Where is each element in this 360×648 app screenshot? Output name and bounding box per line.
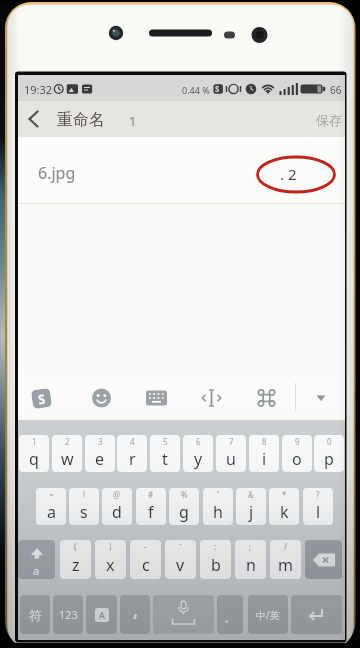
button[interactable]: ~ (36, 488, 66, 525)
staticText: ; (249, 541, 252, 552)
button[interactable] (291, 595, 342, 634)
staticText: * (282, 489, 287, 500)
button[interactable]: @ (102, 488, 132, 525)
staticText: a (47, 501, 56, 523)
button[interactable] (18, 101, 58, 138)
staticText: 2 (65, 436, 70, 447)
staticText: x (106, 554, 115, 576)
button[interactable]: 123 (53, 595, 83, 634)
staticText: ˉ (179, 541, 183, 552)
staticText: k (280, 501, 289, 523)
staticText: S (37, 389, 47, 408)
staticText: & (248, 489, 254, 500)
staticText: 保存 (316, 112, 342, 128)
staticText: 3 (98, 436, 103, 447)
button[interactable]: 中/英 (248, 595, 288, 634)
button[interactable]: 1 (19, 435, 49, 472)
button[interactable] (83, 378, 120, 418)
button[interactable]: 6 (183, 435, 213, 472)
staticText: ) (109, 541, 112, 552)
staticText: 4 (130, 436, 135, 447)
button[interactable]: 7 (216, 435, 246, 472)
staticText: s (80, 501, 88, 523)
button[interactable] (305, 540, 342, 579)
staticText: 6.jpg (38, 162, 76, 184)
button[interactable]: / (270, 540, 301, 579)
button[interactable]: 符 (20, 595, 50, 634)
staticText: - (144, 541, 147, 552)
staticText: , (133, 599, 138, 622)
button[interactable]: 4 (117, 435, 147, 472)
button[interactable]: * (269, 488, 299, 525)
button[interactable]: ' (203, 488, 233, 525)
button[interactable] (153, 595, 214, 634)
button[interactable]: - (130, 540, 161, 579)
staticText: : (214, 541, 217, 552)
staticText: % (181, 489, 188, 500)
button[interactable]: 6.jpg (18, 137, 345, 203)
button[interactable] (248, 378, 285, 418)
staticText: 7 (229, 436, 234, 447)
button[interactable]: a (18, 540, 55, 579)
button[interactable]: 5 (150, 435, 180, 472)
staticText: 66 (330, 83, 342, 97)
staticText: 重命名 (57, 110, 105, 130)
button[interactable]: 0 (314, 435, 344, 472)
button[interactable]: ; (235, 540, 266, 579)
staticText: c (142, 554, 150, 576)
staticText: 19:32 (24, 82, 53, 97)
staticText: 1 (32, 436, 37, 447)
staticText: n (246, 554, 256, 576)
staticText: j (249, 501, 254, 523)
staticText: 0.44 % (182, 84, 210, 96)
button[interactable]: ! (69, 488, 99, 525)
button[interactable] (138, 378, 175, 418)
staticText: i (262, 448, 267, 470)
staticText: 9 (295, 436, 300, 447)
staticText: 0 (327, 436, 332, 447)
button[interactable] (193, 378, 230, 418)
staticText: r (129, 448, 136, 470)
staticText: 8 (262, 436, 267, 447)
staticText: 1 (129, 112, 137, 130)
button[interactable]: # (136, 488, 166, 525)
staticText: b (211, 554, 221, 576)
staticText: ( (74, 541, 77, 552)
staticText: 。 (224, 609, 237, 625)
button[interactable]: ˉ (165, 540, 196, 579)
button[interactable]: 8 (249, 435, 279, 472)
button[interactable]: ? (303, 488, 333, 525)
button[interactable]: 。 (217, 595, 243, 634)
staticText: 5 (163, 436, 168, 447)
button[interactable]: S (23, 378, 60, 418)
staticText: g (179, 501, 189, 523)
staticText: A (99, 609, 105, 621)
button[interactable]: & (236, 488, 266, 525)
button[interactable]: % (169, 488, 199, 525)
staticText: z (72, 554, 80, 576)
staticText: 123 (59, 607, 78, 622)
staticText: l (316, 501, 321, 523)
staticText: ! (83, 489, 86, 500)
button[interactable]: 保存 (313, 101, 345, 138)
staticText: a (33, 563, 40, 578)
button[interactable]: 3 (85, 435, 115, 472)
button[interactable]: A (86, 595, 117, 634)
button[interactable]: , (120, 595, 150, 634)
button[interactable]: ) (95, 540, 126, 579)
button[interactable]: ( (60, 540, 91, 579)
button[interactable]: 9 (282, 435, 312, 472)
button[interactable]: 2 (52, 435, 82, 472)
staticText: / (284, 541, 287, 552)
staticText: q (29, 448, 39, 470)
staticText: t (162, 448, 168, 470)
staticText: ? (316, 489, 320, 500)
staticText: u (226, 448, 236, 470)
staticText: # (148, 489, 154, 500)
staticText: ~ (49, 489, 54, 500)
staticText: 6 (196, 436, 201, 447)
staticText: d (112, 501, 122, 523)
button[interactable] (303, 378, 339, 418)
staticText: v (176, 554, 185, 576)
button[interactable]: : (200, 540, 231, 579)
